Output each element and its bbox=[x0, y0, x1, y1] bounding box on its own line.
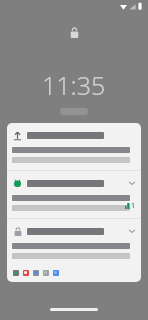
staticText: 1 bbox=[131, 201, 136, 211]
staticText: 11:35 bbox=[42, 68, 106, 102]
button[interactable]: Expand bbox=[7, 171, 141, 218]
button[interactable] bbox=[7, 123, 141, 170]
button[interactable]: Expand bbox=[7, 219, 141, 266]
button[interactable]: Expand bbox=[127, 226, 136, 235]
button[interactable]: Locked bbox=[66, 24, 82, 40]
button[interactable]: Expand bbox=[127, 178, 136, 187]
button[interactable]: Silent notifications bbox=[7, 266, 141, 282]
